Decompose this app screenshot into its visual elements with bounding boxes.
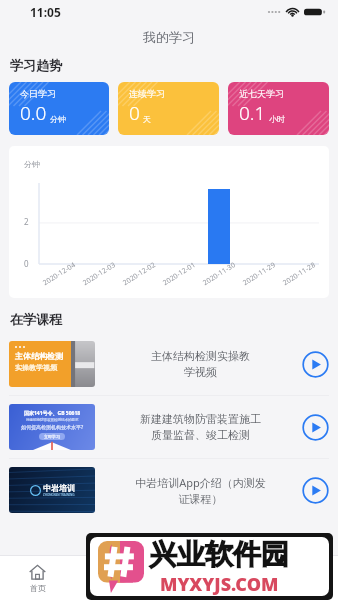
button[interactable]: 首页 [29,564,46,593]
staticText: ZHONGYAN TRAINING [43,493,75,497]
staticText: 兴业软件园 [149,537,289,572]
button[interactable]: 中岩培训 [0,459,338,521]
other: 首页 [29,564,46,581]
button[interactable]: 连续学习 [118,82,219,135]
button[interactable]: 今日学习 [9,82,109,135]
staticText: 2020-12-03 [81,260,118,288]
staticText: 0 [129,100,140,126]
staticText: 分钟 [50,114,66,124]
staticText: 近七天学习 [239,88,284,99]
staticText: 对建筑物防雷装置检测技术的要求 [26,418,79,422]
staticText: 在学课程 [10,311,62,327]
staticText: 0 [24,258,29,269]
button[interactable]: 国家141号令、GB 50618 [0,396,338,458]
staticText: 主体结构检测实操教 学视频 [104,349,297,379]
staticText: 11:05 [30,4,61,20]
staticText: 连续学习 [129,88,165,99]
staticText: 首页 [30,583,46,593]
staticText: 0.0 [20,100,47,126]
staticText: 学习趋势 [10,57,62,73]
staticText: 2020-12-01 [161,260,198,288]
staticText: 0.1 [239,100,266,126]
button[interactable]: 播放课程 [302,477,329,504]
staticText: 立即学习 [44,434,60,439]
button[interactable]: 播放课程 [302,414,329,441]
staticText: 2020-12-02 [121,260,158,288]
staticText: 小时 [269,114,285,124]
staticText: 分钟 [24,159,40,169]
staticText: 国家141号令、GB 50618 [24,410,81,417]
button[interactable]: 播放课程 [302,351,329,378]
staticText: 2020-12-04 [41,260,78,288]
staticText: 2020-11-28 [281,260,318,288]
staticText: 我的学习 [143,29,195,45]
button[interactable]: 近七天学习 [228,82,329,135]
staticText: 2020-11-29 [241,260,278,288]
button[interactable]: 主体结构检测 [0,333,338,395]
staticText: 今日学习 [20,88,56,99]
staticText: 2 [24,216,29,227]
staticText: 实操教学视频 [15,363,57,372]
staticText: 2020-11-30 [201,260,238,288]
staticText: 中岩培训App介绍（内测发 证课程） [104,475,297,506]
staticText: 新建建筑物防雷装置施工 质量监督、竣工检测 [104,412,297,442]
staticText: 如何提高检测机构技术水平? [21,424,84,431]
staticText: 天 [143,114,151,124]
staticText: 主体结构检测 [15,351,63,361]
staticText: MYXYJS.COM [160,572,279,596]
staticText: 中岩培训 [43,483,75,493]
